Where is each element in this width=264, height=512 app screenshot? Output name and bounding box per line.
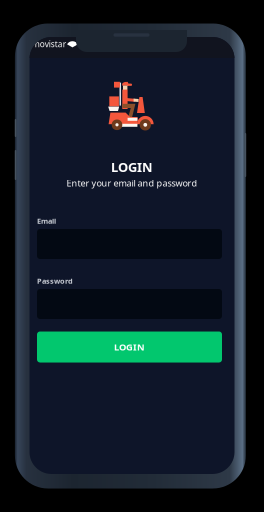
staticText: Email — [37, 216, 56, 226]
button[interactable]: LOGIN — [37, 331, 222, 362]
staticText: LOGIN — [114, 341, 145, 353]
staticText: novistar — [35, 38, 66, 50]
staticText: Enter your email and password — [66, 177, 197, 189]
staticText: LOGIN — [111, 158, 153, 176]
staticText: Password — [37, 276, 73, 286]
